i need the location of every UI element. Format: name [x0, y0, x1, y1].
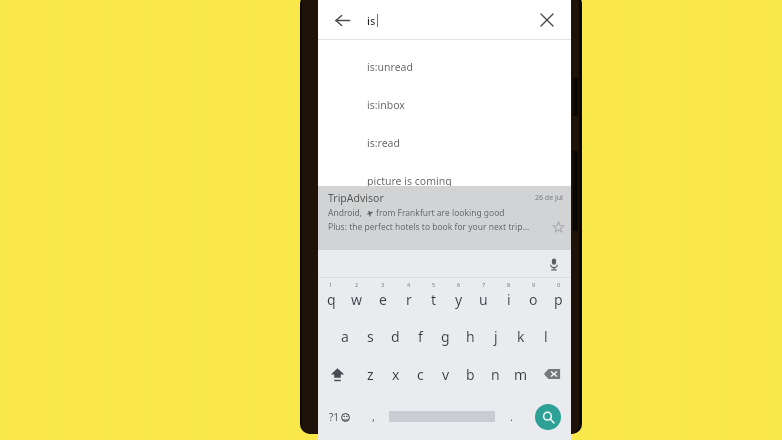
staticText: picture is coming — [367, 174, 452, 188]
staticText: w — [351, 290, 363, 309]
staticText: Android, — [328, 207, 363, 219]
button[interactable]: is:unread — [318, 48, 571, 86]
button[interactable]: . — [498, 393, 524, 440]
button[interactable]: a — [332, 317, 358, 355]
button[interactable]: , — [360, 393, 386, 440]
button[interactable]: m — [508, 355, 533, 393]
staticText: is:inbox — [367, 98, 405, 112]
button[interactable]: Backspace — [533, 355, 571, 393]
button[interactable]: Back — [324, 2, 360, 38]
button[interactable]: 4 — [396, 278, 421, 317]
staticText: k — [517, 327, 525, 346]
button[interactable]: l — [533, 317, 558, 355]
staticText: c — [417, 365, 424, 384]
button[interactable]: picture is coming — [318, 162, 571, 200]
staticText: g — [441, 327, 450, 346]
staticText: s — [367, 327, 374, 346]
staticText: 6 — [457, 281, 461, 288]
staticText: ?1 — [329, 410, 340, 424]
button[interactable]: h — [458, 317, 483, 355]
staticText: 4 — [407, 281, 411, 288]
staticText: m — [514, 365, 528, 384]
staticText: p — [554, 290, 563, 309]
button[interactable]: 0 — [546, 278, 571, 317]
button[interactable]: s — [358, 317, 383, 355]
button[interactable]: 9 — [521, 278, 546, 317]
staticText: x — [392, 365, 400, 384]
staticText: f — [418, 327, 423, 346]
staticText: 2 — [355, 281, 359, 288]
staticText: y — [455, 290, 463, 309]
button[interactable]: v — [433, 355, 458, 393]
button[interactable]: Space — [386, 393, 498, 440]
button[interactable]: 2 — [344, 278, 370, 317]
staticText: b — [466, 365, 475, 384]
button[interactable]: x — [383, 355, 408, 393]
staticText: v — [442, 365, 450, 384]
staticText: n — [491, 365, 500, 384]
button[interactable]: f — [408, 317, 433, 355]
button[interactable]: is:inbox — [318, 86, 571, 124]
staticText: o — [529, 290, 538, 309]
staticText: TripAdvisor — [328, 191, 384, 205]
button[interactable]: TripAdvisor — [318, 186, 571, 250]
button[interactable]: 8 — [496, 278, 521, 317]
button[interactable]: n — [483, 355, 508, 393]
button[interactable]: z — [357, 355, 383, 393]
staticText: h — [466, 327, 475, 346]
staticText: 5 — [432, 281, 436, 288]
staticText: 26 de jul — [535, 193, 563, 203]
staticText: a — [341, 327, 349, 346]
staticText: q — [327, 290, 336, 309]
staticText: z — [367, 365, 374, 384]
button[interactable]: Voice input — [543, 253, 565, 275]
staticText: d — [391, 327, 400, 346]
button[interactable]: 1 — [318, 278, 344, 317]
button[interactable]: b — [458, 355, 483, 393]
button[interactable]: 6 — [446, 278, 471, 317]
staticText: from Frankfurt are looking good — [376, 207, 505, 219]
button[interactable]: Symbols and emoji — [318, 393, 360, 440]
button[interactable]: j — [483, 317, 508, 355]
staticText: 7 — [482, 281, 486, 288]
staticText: is:unread — [367, 60, 413, 74]
button[interactable]: Search — [524, 393, 571, 440]
staticText: 1 — [329, 281, 333, 288]
staticText: 8 — [507, 281, 511, 288]
staticText: e — [379, 290, 387, 309]
staticText: is — [367, 13, 376, 28]
staticText: is:read — [367, 136, 400, 150]
button[interactable]: k — [508, 317, 533, 355]
button[interactable]: 3 — [370, 278, 396, 317]
button[interactable]: c — [408, 355, 433, 393]
staticText: 9 — [532, 281, 536, 288]
button[interactable]: is:read — [318, 124, 571, 162]
button[interactable]: Clear search — [529, 2, 565, 38]
button[interactable]: g — [433, 317, 458, 355]
button[interactable]: d — [383, 317, 408, 355]
button[interactable]: 7 — [471, 278, 496, 317]
staticText: u — [479, 290, 488, 309]
button[interactable]: Shift — [318, 355, 357, 393]
staticText: i — [507, 290, 511, 309]
staticText: r — [406, 290, 412, 309]
staticText: t — [431, 290, 437, 309]
staticText: j — [494, 327, 498, 346]
staticText: 0 — [557, 281, 561, 288]
staticText: Plus: the perfect hotels to book for you… — [328, 221, 530, 233]
staticText: l — [544, 327, 548, 346]
button[interactable]: 5 — [421, 278, 446, 317]
staticText: , — [372, 409, 375, 424]
staticText: . — [510, 409, 513, 424]
button[interactable]: Star conversation — [551, 220, 565, 234]
staticText: 3 — [381, 281, 385, 288]
